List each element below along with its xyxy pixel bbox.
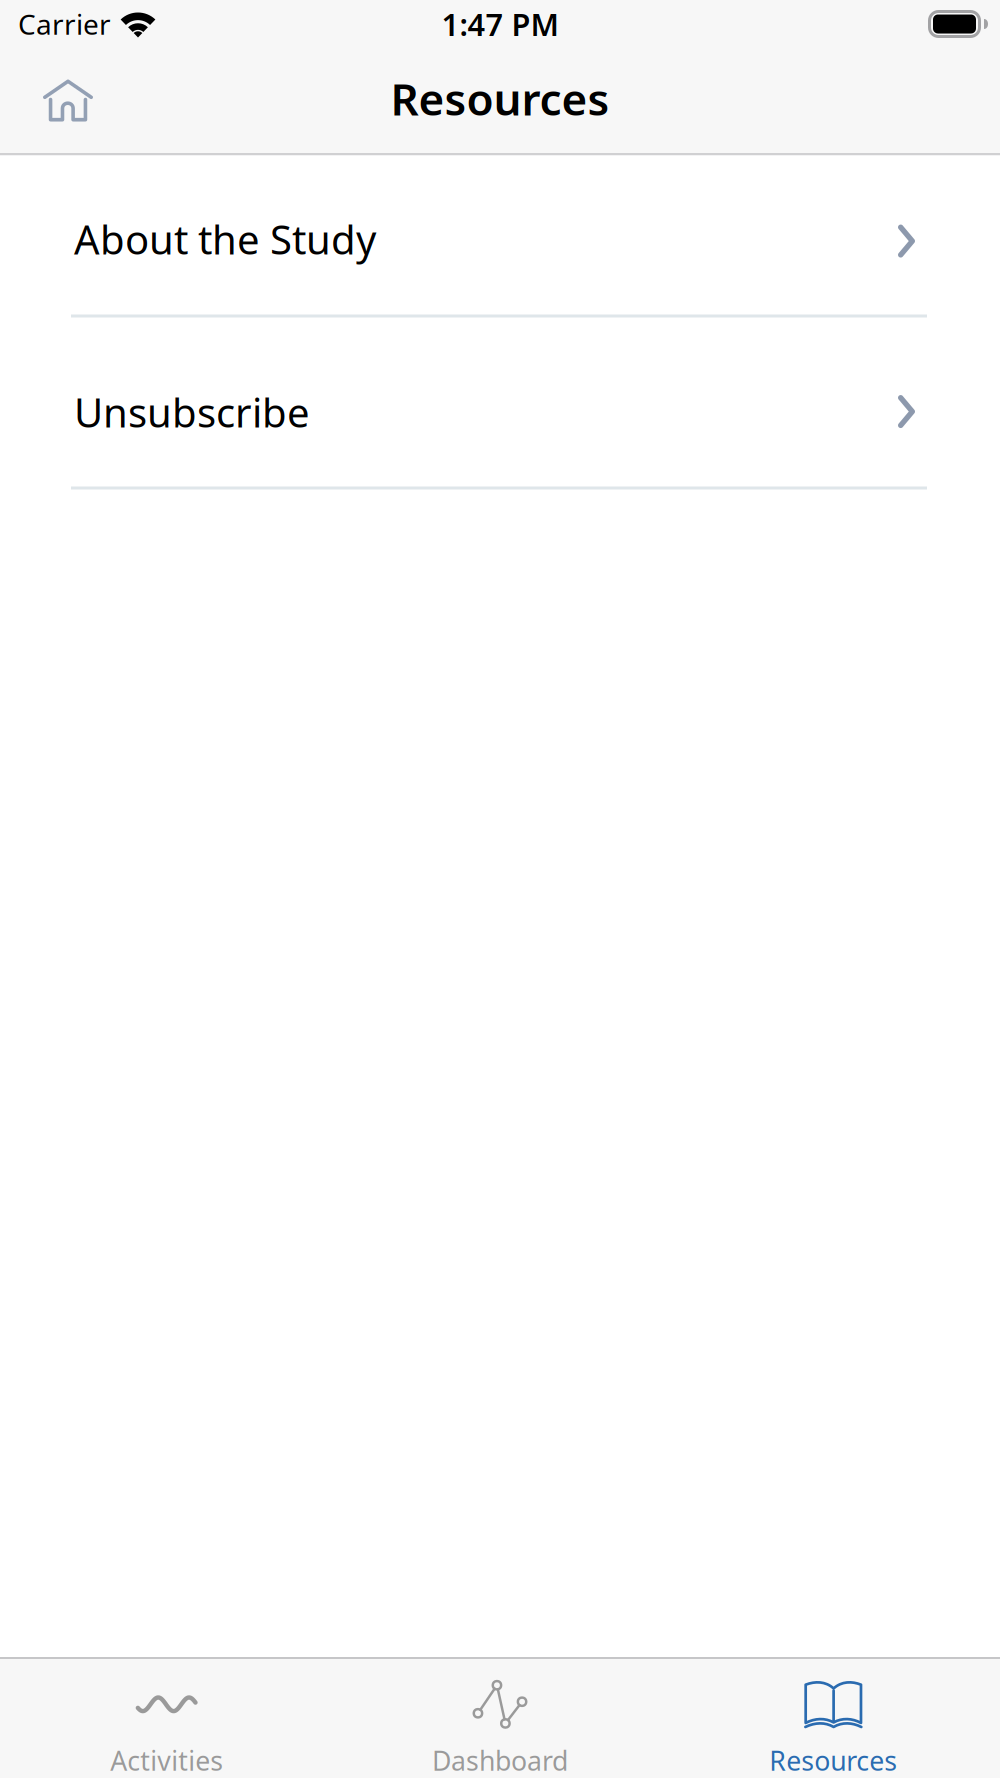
button[interactable]: Resources	[667, 1659, 1000, 1778]
staticText: Dashboard	[432, 1743, 568, 1778]
staticText: 1:47 PM	[441, 4, 558, 44]
button[interactable]: Unsubscribe	[0, 317, 1000, 486]
staticText: About the Study	[74, 212, 376, 266]
staticText: Activities	[110, 1743, 223, 1778]
button[interactable]: Dashboard	[333, 1659, 667, 1778]
staticText: Resources	[390, 69, 609, 128]
staticText: Resources	[769, 1743, 897, 1778]
staticText: Unsubscribe	[74, 385, 310, 439]
button[interactable]: Activities	[0, 1659, 333, 1778]
button[interactable]: Home	[23, 56, 113, 144]
button[interactable]: About the Study	[0, 155, 1000, 314]
staticText: Carrier	[18, 5, 111, 43]
